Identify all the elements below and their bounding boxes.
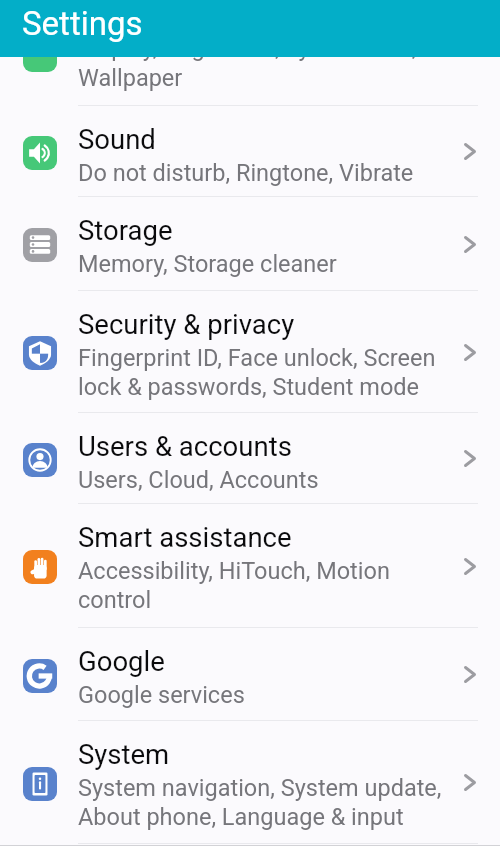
button[interactable]: Smart assistance [0, 504, 500, 628]
other: Storage [457, 232, 482, 257]
button[interactable]: Google [0, 628, 500, 721]
button[interactable]: Storage [0, 197, 500, 291]
other: System [457, 770, 482, 795]
staticText: Storage [78, 214, 173, 246]
button[interactable]: Settings [0, 0, 500, 57]
other: Google [457, 662, 482, 687]
staticText: Wallpaper [78, 64, 183, 92]
staticText: Users, Cloud, Accounts [78, 466, 319, 494]
staticText: Accessibility, HiTouch, Motion control [78, 557, 390, 614]
staticText: Smart assistance [78, 521, 292, 553]
other: Security & privacy [457, 340, 482, 365]
staticText: Sound [78, 123, 156, 155]
staticText: Google [78, 645, 165, 677]
staticText: Settings [22, 4, 143, 43]
staticText: Fingerprint ID, Face unlock, Screen lock… [78, 344, 436, 401]
button[interactable]: Users & accounts [0, 413, 500, 504]
staticText: System navigation, System update, About … [78, 774, 442, 831]
staticText: Memory, Storage cleaner [78, 250, 337, 278]
staticText: Do not disturb, Ringtone, Vibrate [78, 159, 414, 187]
other: Sound [457, 139, 482, 164]
other: Users & accounts [457, 446, 482, 471]
button[interactable]: Security & privacy [0, 291, 500, 413]
staticText: Security & privacy [78, 308, 295, 340]
staticText: Users & accounts [78, 430, 292, 462]
other: Smart assistance [457, 554, 482, 579]
button[interactable]: Display, Brightness, Eye comfort, [0, 56, 500, 106]
staticText: Google services [78, 681, 245, 709]
button[interactable]: System [0, 721, 500, 844]
button[interactable]: Sound [0, 106, 500, 197]
staticText: Display, Brightness, Eye comfort, [78, 34, 417, 62]
staticText: System [78, 738, 170, 770]
